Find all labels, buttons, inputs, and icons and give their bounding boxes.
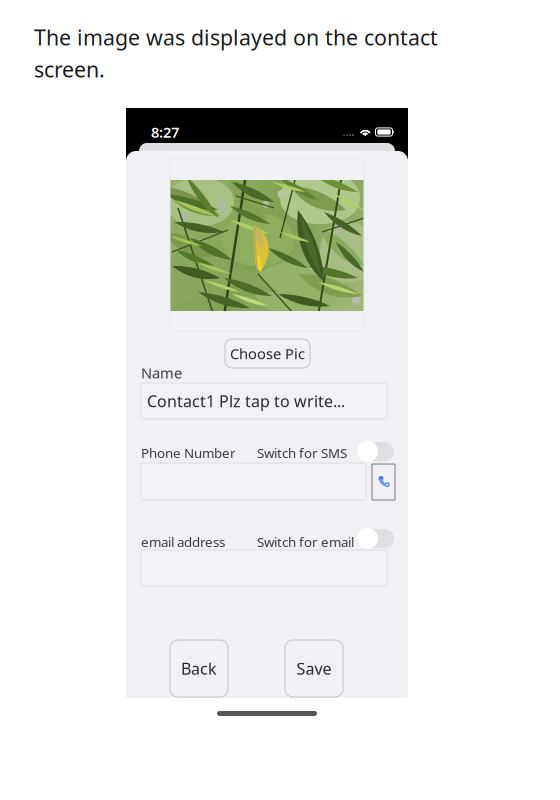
staticText: Switch for SMS: [257, 444, 347, 462]
staticText: Phone Number: [141, 444, 236, 462]
staticText: Name: [141, 363, 182, 382]
button[interactable]: Choose Pic: [225, 339, 310, 368]
staticText: Back: [181, 658, 217, 679]
button[interactable]: Call: [372, 464, 395, 500]
staticText: Contact1 Plz tap to write...: [147, 390, 345, 412]
button[interactable]: Toggle: [357, 441, 394, 462]
button[interactable]: Toggle: [357, 528, 394, 549]
staticText: 8:27: [151, 122, 179, 142]
button[interactable]: Save: [285, 640, 343, 697]
staticText: email address: [141, 533, 225, 551]
button[interactable]: Back: [170, 640, 228, 697]
staticText: Choose Pic: [230, 344, 305, 363]
staticText: Switch for email: [257, 533, 354, 551]
staticText: Save: [296, 658, 331, 679]
staticText: The image was displayed on the contact: [34, 23, 438, 51]
staticText: screen.: [34, 55, 105, 83]
